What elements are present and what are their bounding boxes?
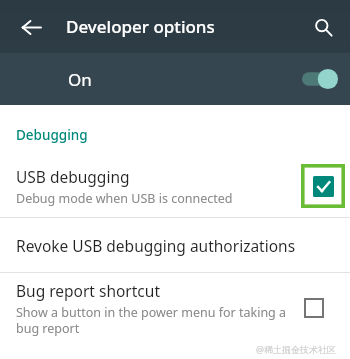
button[interactable]: USB debugging [0,155,350,217]
staticText: Revoke USB debugging authorizations [16,235,296,256]
staticText: USB debugging [16,166,130,187]
staticText: Show a button in the power menu for taki… [16,304,288,336]
button[interactable]: Bug report shortcut [0,273,350,343]
button[interactable]: Back [12,8,50,46]
staticText: On [68,68,92,91]
staticText: Debugging [16,126,88,144]
button[interactable]: On [0,53,350,105]
button[interactable]: Bug report shortcut checkbox [294,288,334,328]
staticText: Bug report shortcut [16,280,160,301]
button[interactable]: Search [304,8,342,46]
staticText: @稀土掘金技术社区 [255,343,336,355]
button[interactable]: Revoke USB debugging authorizations [0,218,350,272]
staticText: Developer options [66,15,215,38]
staticText: Debug mode when USB is connected [16,190,233,207]
button[interactable]: USB debugging checkbox [301,164,345,208]
